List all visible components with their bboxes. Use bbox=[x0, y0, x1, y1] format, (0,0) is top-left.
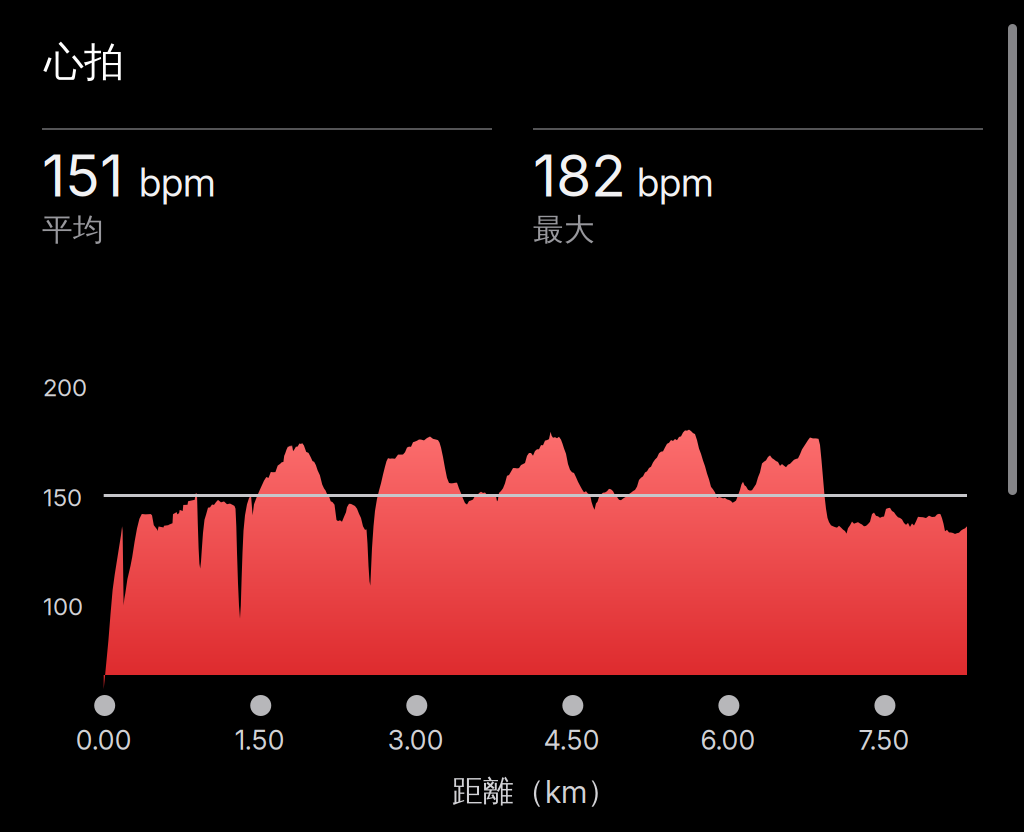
staticText: 平均 bbox=[42, 210, 104, 249]
staticText: 200 bbox=[43, 373, 87, 402]
staticText: 6.00 bbox=[700, 724, 755, 756]
staticText: 心拍 bbox=[44, 37, 124, 87]
staticText: bpm bbox=[139, 159, 216, 206]
staticText: 0.00 bbox=[76, 724, 132, 756]
staticText: 3.00 bbox=[388, 724, 444, 756]
staticText: 151 bbox=[42, 141, 123, 210]
staticText: 距離（km） bbox=[452, 772, 618, 811]
staticText: 4.50 bbox=[544, 724, 600, 756]
staticText: 100 bbox=[43, 592, 83, 621]
staticText: 7.50 bbox=[858, 724, 909, 756]
staticText: 1.50 bbox=[235, 724, 285, 756]
staticText: bpm bbox=[637, 159, 714, 206]
staticText: 最大 bbox=[533, 210, 595, 249]
staticText: 150 bbox=[43, 483, 82, 512]
staticText: 182 bbox=[533, 141, 626, 210]
